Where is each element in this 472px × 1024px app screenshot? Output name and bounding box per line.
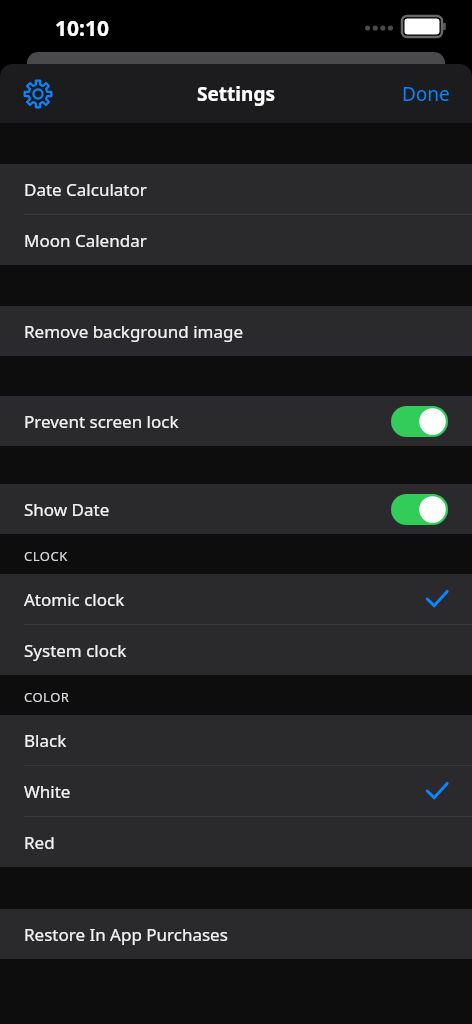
staticText: 10:10 [55,14,109,43]
staticText: Date Calculator [24,178,147,201]
staticText: Done [402,81,450,107]
button[interactable]: Settings gear [14,70,62,118]
button[interactable]: Atomic clock [0,574,472,624]
button[interactable]: Moon Calendar [0,215,472,265]
button[interactable]: Done [380,69,472,119]
button[interactable]: Remove background image [0,306,472,356]
staticText: Remove background image [24,320,244,343]
button[interactable]: Toggle on [391,494,448,525]
staticText: System clock [24,639,127,662]
staticText: Restore In App Purchases [24,923,228,946]
staticText: COLOR [24,688,70,706]
staticText: Settings [0,81,472,107]
staticText: White [24,780,71,803]
button[interactable]: Toggle on [391,406,448,437]
staticText: CLOCK [24,547,68,565]
button[interactable]: Restore In App Purchases [0,909,472,959]
button[interactable]: System clock [0,625,472,675]
button[interactable]: White [0,766,472,816]
staticText: Black [24,729,67,752]
button[interactable]: Prevent screen lock [0,396,472,446]
button[interactable]: Date Calculator [0,164,472,214]
button[interactable]: Show Date [0,484,472,534]
staticText: Atomic clock [24,588,125,611]
staticText: Red [24,831,55,854]
staticText: Prevent screen lock [24,410,179,433]
button[interactable]: Red [0,817,472,867]
button[interactable]: Black [0,715,472,765]
staticText: Show Date [24,498,110,521]
staticText: Moon Calendar [24,229,147,252]
